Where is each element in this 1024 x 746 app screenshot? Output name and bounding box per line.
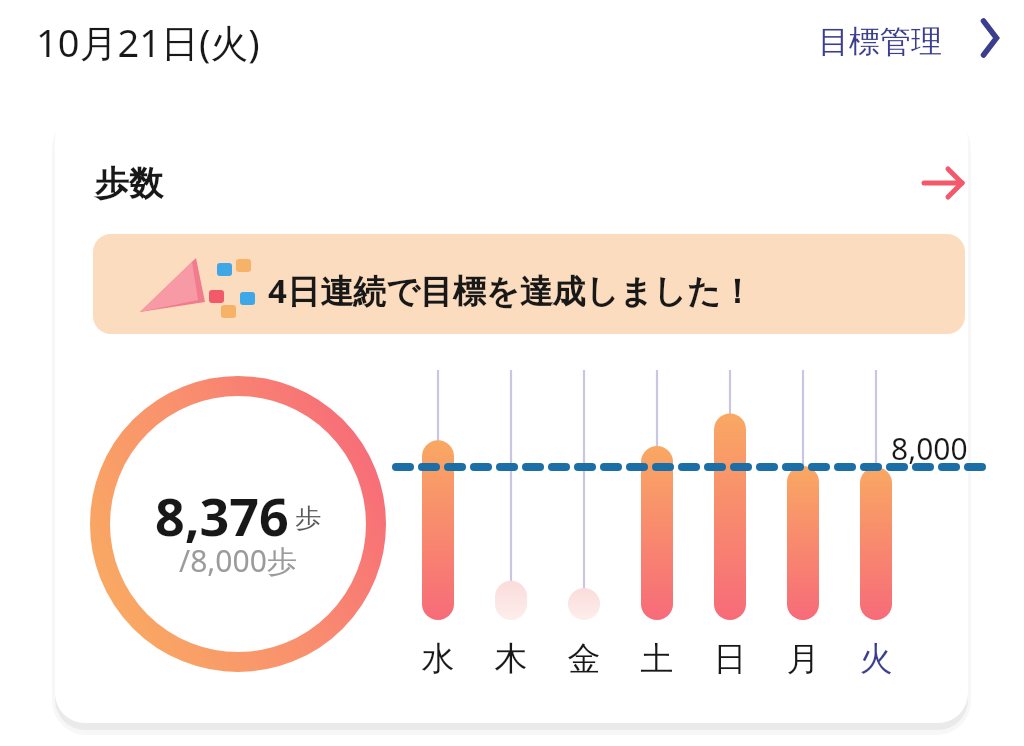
button[interactable] [55, 110, 968, 723]
button[interactable]: 歩数の詳細 [910, 152, 972, 214]
button[interactable]: 目標管理 [808, 10, 1008, 64]
button[interactable] [28, 12, 318, 64]
